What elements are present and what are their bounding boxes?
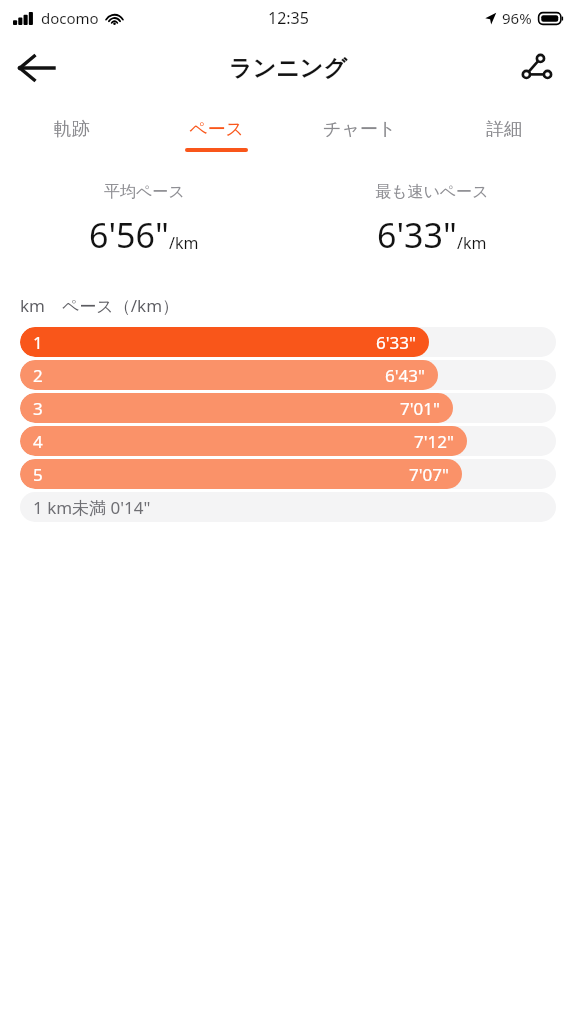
- staticText: 6'33": [377, 212, 457, 258]
- staticText: 1 km未満 0'14": [33, 496, 151, 519]
- staticText: km ペース（/km）: [20, 294, 180, 317]
- button[interactable]: 詳細: [432, 100, 576, 158]
- staticText: 7'01": [400, 397, 440, 420]
- staticText: docomo: [41, 8, 99, 28]
- staticText: 6'56": [89, 212, 169, 258]
- staticText: ペース: [189, 118, 244, 141]
- staticText: チャート: [323, 118, 397, 141]
- button[interactable]: 1: [20, 327, 556, 357]
- staticText: 3: [33, 397, 43, 420]
- staticText: 5: [33, 463, 43, 486]
- staticText: 7'12": [414, 430, 454, 453]
- button[interactable]: 軌跡: [0, 100, 144, 158]
- button[interactable]: 2: [20, 360, 556, 390]
- staticText: 最も速いペース: [375, 182, 489, 202]
- staticText: 2: [33, 364, 43, 387]
- staticText: 96%: [502, 8, 532, 28]
- staticText: 12:35: [268, 7, 309, 29]
- staticText: 詳細: [486, 118, 522, 141]
- button[interactable]: Share route: [508, 40, 564, 96]
- button[interactable]: ペース: [144, 100, 288, 158]
- staticText: /km: [169, 232, 199, 254]
- button[interactable]: Back: [6, 38, 66, 98]
- staticText: /km: [457, 232, 487, 254]
- button[interactable]: 4: [20, 426, 556, 456]
- staticText: 1: [33, 331, 43, 354]
- staticText: 6'33": [376, 331, 416, 354]
- button[interactable]: 5: [20, 459, 556, 489]
- button[interactable]: 1 km未満 0'14": [20, 492, 556, 522]
- button[interactable]: チャート: [288, 100, 432, 158]
- staticText: ランニング: [229, 54, 347, 83]
- staticText: 4: [33, 430, 43, 453]
- staticText: 7'07": [409, 463, 449, 486]
- staticText: 6'43": [385, 364, 425, 387]
- staticText: 軌跡: [54, 118, 90, 141]
- staticText: 平均ペース: [104, 182, 185, 202]
- button[interactable]: 3: [20, 393, 556, 423]
